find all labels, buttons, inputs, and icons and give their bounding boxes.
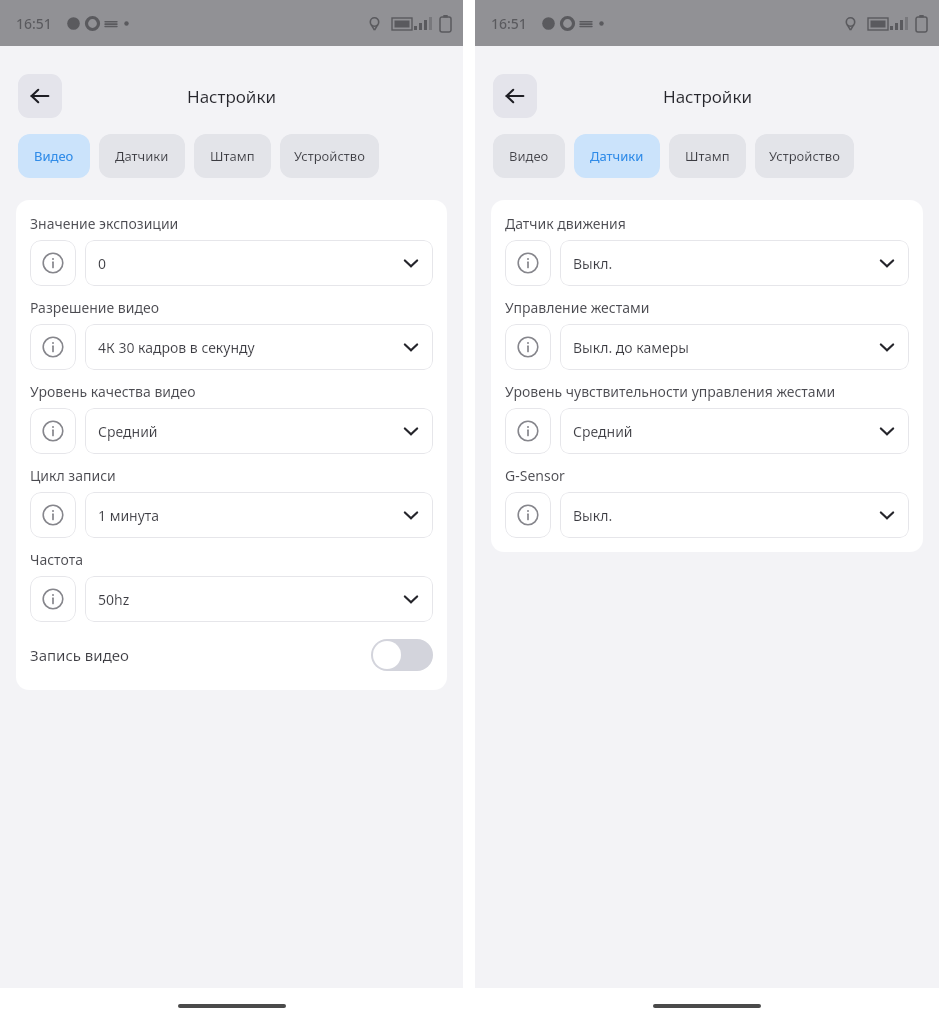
staticText: Датчики [590,147,644,165]
staticText: Выкл. [573,506,878,525]
staticText: Настройки [187,85,276,108]
button[interactable]: Средний [85,408,433,454]
staticText: Устройство [769,147,840,165]
button[interactable]: 4К 30 кадров в секунду [85,324,433,370]
staticText: Видео [509,147,549,165]
staticText: 0 [98,254,402,273]
staticText: Выкл. [573,254,878,273]
staticText: Средний [98,422,402,441]
staticText: 16:51 [491,14,527,33]
staticText: Выкл. до камеры [573,338,878,357]
button[interactable]: 50hz [85,576,433,622]
button[interactable]: Info [505,240,551,286]
button[interactable]: Выкл. [560,240,909,286]
staticText: Датчики [115,147,169,165]
button[interactable]: Back [18,74,62,118]
staticText: Датчик движения [505,214,909,233]
staticText: Уровень чувствительности управления жест… [505,382,909,401]
staticText: Цикл записи [30,466,433,485]
button[interactable]: Устройство [755,134,854,178]
button[interactable]: Info [30,492,76,538]
staticText: Уровень качества видео [30,382,433,401]
button[interactable]: Info [30,576,76,622]
staticText: G-Sensor [505,466,909,485]
button[interactable]: Штамп [669,134,746,178]
button[interactable]: Видео [493,134,565,178]
button[interactable]: Датчики [574,134,660,178]
button[interactable]: 0 [85,240,433,286]
button[interactable]: Запись видео [30,634,433,676]
button[interactable]: Выкл. до камеры [560,324,909,370]
staticText: Средний [573,422,878,441]
staticText: 4К 30 кадров в секунду [98,338,402,357]
button[interactable]: Info [30,408,76,454]
staticText: Частота [30,550,433,569]
staticText: Настройки [663,85,752,108]
button[interactable]: Info [505,492,551,538]
staticText: 1 минута [98,506,402,525]
staticText: 50hz [98,590,402,609]
staticText: Штамп [210,147,255,165]
button[interactable]: Видео [18,134,90,178]
button[interactable]: Back [493,74,537,118]
button[interactable]: Датчики [99,134,185,178]
staticText: Штамп [685,147,730,165]
button[interactable]: Выкл. [560,492,909,538]
button[interactable]: Info [30,324,76,370]
button[interactable]: Info [30,240,76,286]
staticText: Значение экспозиции [30,214,433,233]
staticText: Устройство [294,147,365,165]
button[interactable]: Средний [560,408,909,454]
staticText: Управление жестами [505,298,909,317]
button[interactable]: Info [505,324,551,370]
button[interactable]: Устройство [280,134,379,178]
staticText: Запись видео [30,645,371,665]
staticText: Разрешение видео [30,298,433,317]
staticText: 16:51 [16,14,52,33]
button[interactable]: 1 минута [85,492,433,538]
staticText: Видео [34,147,74,165]
button[interactable]: Info [505,408,551,454]
button[interactable]: Штамп [194,134,271,178]
